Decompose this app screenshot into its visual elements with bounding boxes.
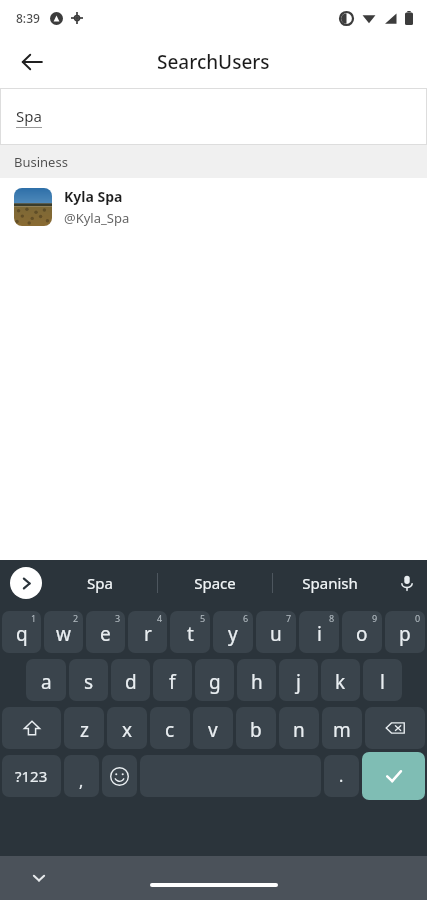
staticText: Space xyxy=(194,573,236,593)
button[interactable]: g xyxy=(195,659,234,701)
staticText: r xyxy=(144,621,152,647)
staticText: z xyxy=(80,717,89,743)
staticText: Kyla Spa xyxy=(64,187,123,206)
button[interactable]: e xyxy=(86,611,125,653)
staticText: t xyxy=(187,621,194,647)
button[interactable]: p xyxy=(385,611,425,653)
button[interactable]: w xyxy=(44,611,83,653)
button[interactable]: x xyxy=(107,707,147,749)
button[interactable]: q xyxy=(2,611,41,653)
staticText: Business xyxy=(14,153,68,171)
button[interactable]: Hide keyboard xyxy=(22,861,56,895)
staticText: 7 xyxy=(286,612,292,624)
staticText: o xyxy=(356,621,368,647)
staticText: v xyxy=(208,717,218,743)
button[interactable]: Spa xyxy=(42,560,157,606)
staticText: j xyxy=(296,669,301,695)
staticText: 8 xyxy=(329,612,335,624)
staticText: e xyxy=(100,621,111,647)
button[interactable]: u xyxy=(256,611,296,653)
button[interactable]: Enter xyxy=(362,752,425,800)
button[interactable]: Back xyxy=(8,38,56,86)
staticText: b xyxy=(250,717,262,743)
button[interactable]: Emoji xyxy=(102,755,137,797)
button[interactable]: Spanish xyxy=(273,560,387,606)
button[interactable]: o xyxy=(342,611,382,653)
staticText: l xyxy=(380,669,385,695)
button[interactable]: j xyxy=(279,659,318,701)
button[interactable]: Expand toolbar xyxy=(10,567,42,599)
button[interactable]: Shift xyxy=(2,707,61,749)
staticText: h xyxy=(251,669,263,695)
staticText: 1 xyxy=(31,612,37,624)
button[interactable]: r xyxy=(128,611,167,653)
button[interactable]: n xyxy=(279,707,319,749)
staticText: . xyxy=(339,765,344,787)
staticText: k xyxy=(335,669,346,695)
staticText: , xyxy=(79,770,84,792)
button[interactable]: s xyxy=(69,659,108,701)
staticText: g xyxy=(209,669,221,695)
staticText: 4 xyxy=(157,612,163,624)
staticText: w xyxy=(56,621,71,647)
button[interactable]: , xyxy=(64,755,99,797)
staticText: 6 xyxy=(243,612,249,624)
button[interactable]: m xyxy=(322,707,362,749)
staticText: d xyxy=(125,669,137,695)
staticText: a xyxy=(41,669,52,695)
button[interactable]: c xyxy=(150,707,190,749)
button[interactable]: f xyxy=(153,659,192,701)
staticText: 9 xyxy=(372,612,378,624)
staticText: 3 xyxy=(115,612,121,624)
button[interactable]: . xyxy=(324,755,359,797)
staticText: u xyxy=(270,621,282,647)
staticText: q xyxy=(16,621,28,647)
button[interactable]: h xyxy=(237,659,276,701)
staticText: y xyxy=(228,621,238,647)
button[interactable]: z xyxy=(64,707,104,749)
button[interactable]: a xyxy=(26,659,66,701)
staticText: n xyxy=(293,717,305,743)
button[interactable]: ?123 xyxy=(2,755,61,797)
button[interactable]: l xyxy=(363,659,402,701)
staticText: 2 xyxy=(73,612,79,624)
staticText: x xyxy=(122,717,133,743)
button[interactable]: v xyxy=(193,707,233,749)
button[interactable]: t xyxy=(170,611,210,653)
button[interactable]: b xyxy=(236,707,276,749)
staticText: ?123 xyxy=(15,766,48,786)
staticText: c xyxy=(165,717,175,743)
button[interactable]: y xyxy=(213,611,253,653)
staticText: m xyxy=(333,717,351,743)
staticText: @Kyla_Spa xyxy=(64,209,130,227)
staticText: s xyxy=(84,669,94,695)
staticText: SearchUsers xyxy=(157,49,270,75)
button[interactable]: i xyxy=(299,611,339,653)
staticText: f xyxy=(169,669,176,695)
staticText: p xyxy=(399,621,411,647)
button[interactable]: Home xyxy=(150,883,278,887)
button[interactable]: d xyxy=(111,659,150,701)
button[interactable]: Spa xyxy=(0,88,427,145)
staticText: 5 xyxy=(200,612,206,624)
button[interactable]: Kyla Spa xyxy=(0,178,427,236)
button[interactable]: Voice input xyxy=(387,560,427,606)
staticText: Spa xyxy=(16,106,42,126)
staticText: i xyxy=(317,621,322,647)
staticText: Spa xyxy=(87,573,113,593)
button[interactable]: k xyxy=(321,659,360,701)
button[interactable]: Space xyxy=(158,560,272,606)
staticText: 0 xyxy=(415,612,421,624)
staticText: Spanish xyxy=(302,573,358,593)
staticText: 8:39 xyxy=(16,10,40,26)
button[interactable]: Backspace xyxy=(365,707,425,749)
